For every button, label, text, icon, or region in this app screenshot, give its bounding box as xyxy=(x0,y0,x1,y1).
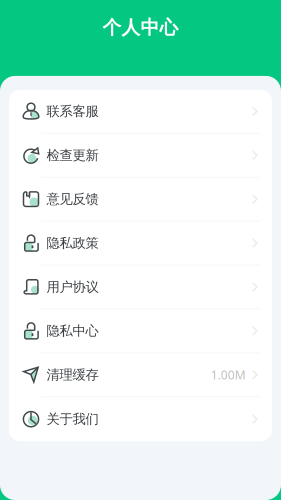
staticText: 意见反馈 xyxy=(46,191,98,207)
staticText: 联系客服 xyxy=(46,103,98,120)
staticText: 1.00M xyxy=(211,367,246,383)
button[interactable]: 隐私政策 xyxy=(9,222,272,265)
staticText: 用户协议 xyxy=(46,279,98,295)
staticText: 清理缓存 xyxy=(46,367,98,383)
button[interactable]: 意见反馈 xyxy=(9,178,272,222)
button[interactable]: 检查更新 xyxy=(9,134,272,178)
staticText: 检查更新 xyxy=(46,147,98,163)
button[interactable]: 清理缓存 xyxy=(9,353,272,397)
button[interactable]: 联系客服 xyxy=(9,90,272,134)
button[interactable]: 关于我们 xyxy=(9,397,272,441)
button[interactable]: 隐私中心 xyxy=(9,309,272,353)
staticText: 关于我们 xyxy=(46,411,98,427)
button[interactable]: 用户协议 xyxy=(9,265,272,309)
staticText: 个人中心 xyxy=(102,16,178,39)
staticText: 隐私政策 xyxy=(46,235,98,251)
staticText: 隐私中心 xyxy=(46,323,98,339)
